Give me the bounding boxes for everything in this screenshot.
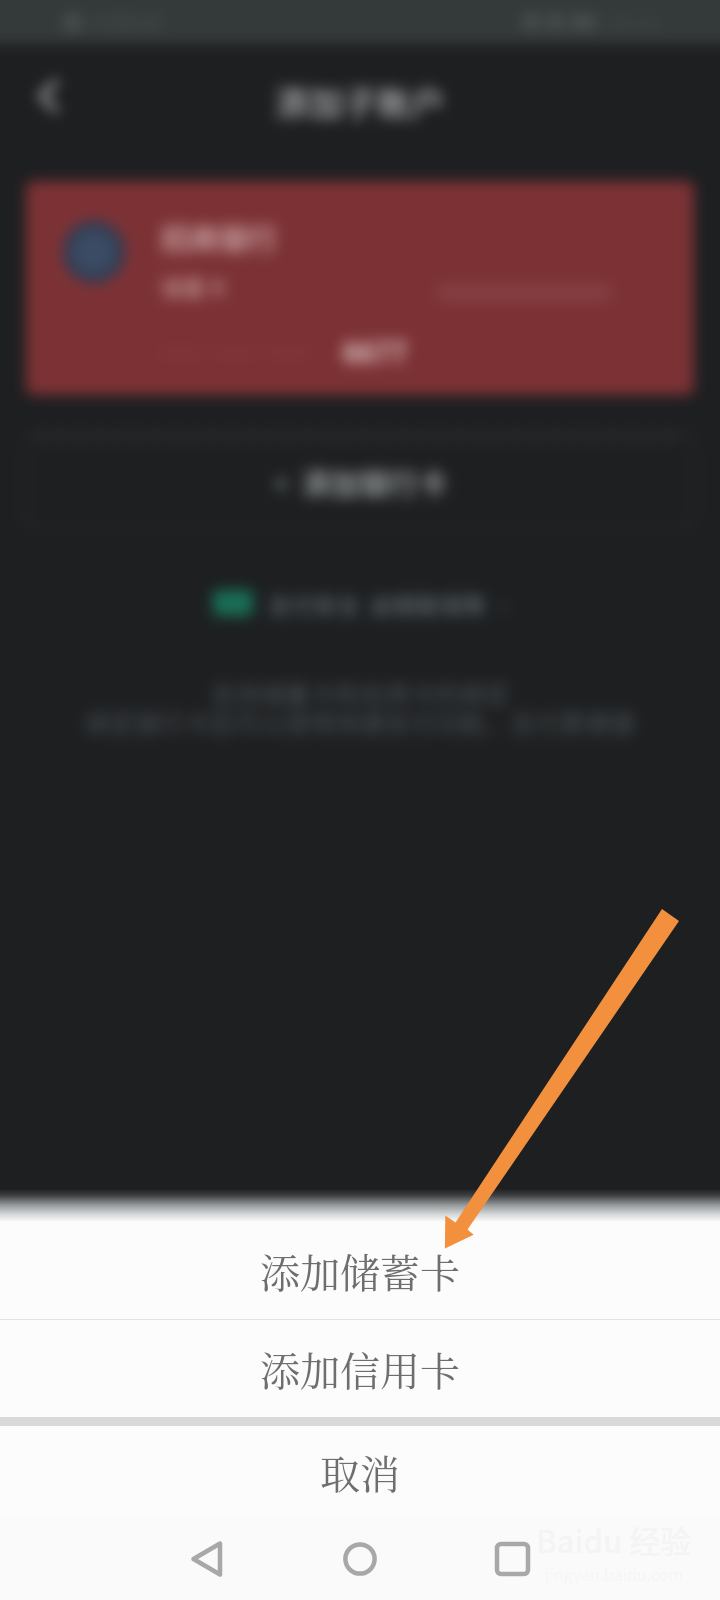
button[interactable]: Back — [20, 68, 76, 124]
button[interactable]: Home — [320, 1519, 400, 1599]
staticText: 支付安全 由银联保障 — [268, 587, 486, 620]
staticText: + — [273, 460, 290, 503]
staticText: 添加储蓄卡 — [260, 1242, 460, 1299]
button[interactable]: 取消 — [0, 1426, 720, 1517]
staticText: 添加子账户 — [275, 77, 445, 126]
staticText: 添加信用卡 — [260, 1340, 460, 1397]
button[interactable]: Recent apps — [472, 1519, 552, 1599]
button[interactable]: Back — [166, 1519, 246, 1599]
staticText: 招商银行 — [161, 216, 278, 258]
staticText: 添加银行卡 — [302, 461, 448, 503]
staticText: 储蓄卡 — [161, 270, 228, 302]
staticText: 支持储蓄卡和信用卡的绑定 绑定银行卡后可以使用快捷支付功能，支付更便捷 — [0, 675, 720, 740]
button[interactable]: 添加信用卡 — [0, 1320, 720, 1417]
staticText: 取消 — [320, 1443, 400, 1500]
staticText: 6677 — [343, 331, 407, 372]
button[interactable]: 添加储蓄卡 — [0, 1222, 720, 1319]
